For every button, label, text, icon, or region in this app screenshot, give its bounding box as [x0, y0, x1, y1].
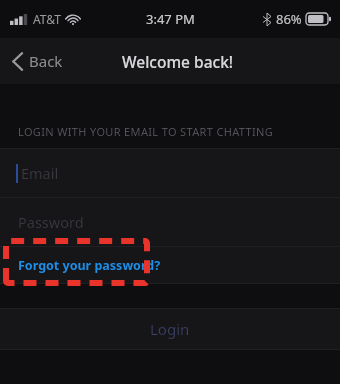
staticText: Email	[21, 163, 59, 183]
staticText: 86%	[276, 10, 302, 28]
button[interactable]: Password	[0, 198, 340, 246]
staticText: LOGIN WITH YOUR EMAIL TO START CHATTING	[18, 124, 274, 139]
button[interactable]: Email	[0, 149, 340, 197]
button[interactable]: Login	[0, 309, 340, 349]
staticText: Welcome back!	[122, 51, 234, 72]
staticText: Login	[150, 319, 190, 339]
staticText: 3:47 PM	[146, 10, 195, 28]
staticText: Forgot your password?	[18, 257, 161, 274]
button[interactable]: Forgot your password?	[0, 247, 340, 283]
button[interactable]: Back	[0, 45, 75, 77]
staticText: Password	[18, 212, 84, 232]
staticText: Back	[29, 51, 63, 71]
staticText: AT&T	[33, 11, 61, 27]
